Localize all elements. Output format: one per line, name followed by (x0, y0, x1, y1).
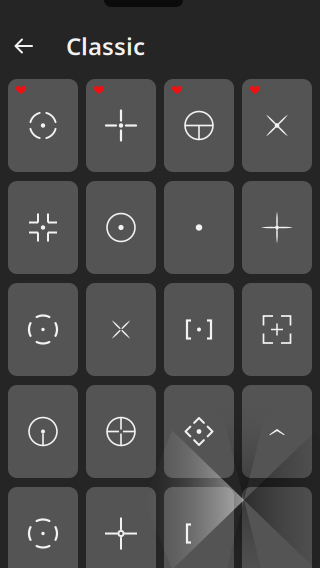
button[interactable]: Reticle (164, 385, 234, 478)
button[interactable]: Reticle (86, 181, 156, 274)
button[interactable]: Reticle (164, 181, 234, 274)
button[interactable]: Reticle (8, 385, 78, 478)
button[interactable]: Reticle (242, 181, 312, 274)
button[interactable]: Reticle (164, 79, 234, 172)
button[interactable]: Reticle (164, 283, 234, 376)
button[interactable]: Reticle (8, 283, 78, 376)
button[interactable]: Reticle (242, 487, 312, 568)
button[interactable]: Reticle (86, 487, 156, 568)
button[interactable]: Back (2, 24, 46, 68)
staticText: Classic (66, 30, 145, 62)
button[interactable]: Reticle (8, 79, 78, 172)
button[interactable]: Reticle (86, 283, 156, 376)
button[interactable]: Reticle (8, 181, 78, 274)
button[interactable]: Reticle (86, 79, 156, 172)
button[interactable]: Reticle (242, 385, 312, 478)
button[interactable]: Reticle (242, 79, 312, 172)
button[interactable]: Reticle (242, 283, 312, 376)
button[interactable]: Reticle (8, 487, 78, 568)
button[interactable]: Reticle (86, 385, 156, 478)
button[interactable]: Reticle (164, 487, 234, 568)
